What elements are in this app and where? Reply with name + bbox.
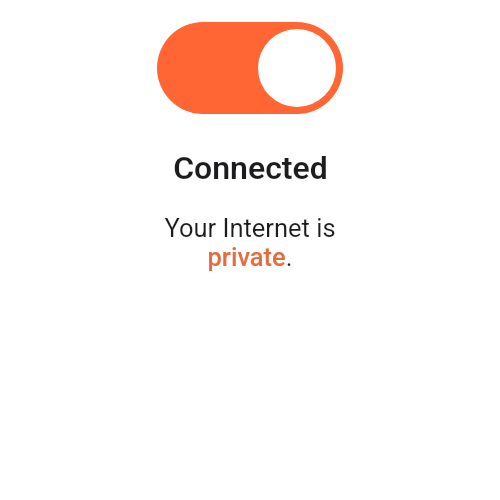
staticText: Your Internet is private. [164, 213, 336, 272]
staticText: Connected [173, 149, 328, 187]
toggle[interactable]: VPN connection toggle, on [157, 22, 343, 114]
